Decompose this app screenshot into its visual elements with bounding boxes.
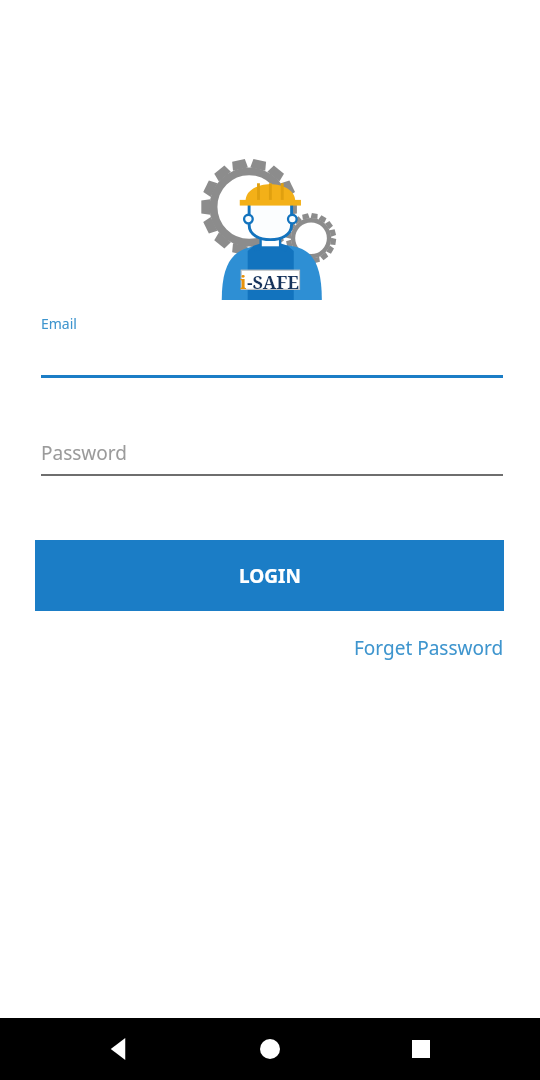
button[interactable]: Forget Password xyxy=(354,635,504,661)
button[interactable]: LOGIN xyxy=(35,540,504,611)
other: i-SAFE logo xyxy=(198,158,342,300)
staticText: LOGIN xyxy=(239,563,301,589)
button[interactable]: Home xyxy=(239,1018,301,1080)
staticText: i xyxy=(240,270,247,295)
button[interactable]: Password xyxy=(41,440,503,476)
button[interactable]: Back xyxy=(89,1018,151,1080)
staticText: -SAFE xyxy=(247,270,300,295)
staticText: Email xyxy=(41,314,77,333)
staticText: Forget Password xyxy=(354,635,504,661)
button[interactable]: Email xyxy=(41,314,503,378)
staticText: Password xyxy=(41,440,127,466)
button[interactable]: Recent apps xyxy=(390,1018,452,1080)
